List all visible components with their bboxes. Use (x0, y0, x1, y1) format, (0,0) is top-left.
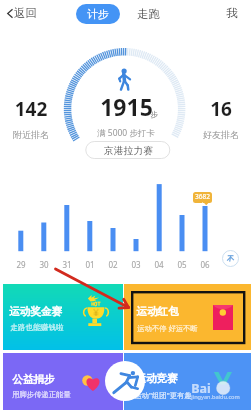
staticText: 返回 (14, 6, 37, 20)
staticText: 京港拉力赛 (104, 145, 153, 157)
staticText: 走路也能赚钱啦 (10, 323, 64, 333)
staticText: 用脚步传递正能量 (12, 390, 71, 399)
button[interactable]: 运动奖金赛 (3, 284, 123, 350)
staticText: 运动"组团"更有趣 (134, 390, 192, 400)
staticText: 29 (6, 259, 36, 270)
staticText: 3682步 (193, 192, 212, 203)
staticText: 计步 (87, 7, 109, 21)
button[interactable]: 公益捐步 (3, 353, 123, 410)
button[interactable] (192, 96, 250, 140)
staticText: 运动奖金赛 (9, 305, 62, 318)
staticText: 142 (0, 96, 66, 122)
staticText: 30 (29, 259, 59, 270)
button[interactable]: 运动红包 (124, 284, 251, 350)
staticText: 我 (226, 6, 238, 20)
staticText: 附近排名 (0, 129, 66, 140)
staticText: 02 (98, 259, 128, 270)
staticText: Bai (191, 380, 211, 397)
staticText: 步 (150, 110, 158, 119)
staticText: 05 (167, 259, 197, 270)
staticText: 04 (144, 259, 174, 270)
button[interactable]: 京港拉力赛 (86, 142, 170, 159)
staticText: 1915 (100, 91, 153, 122)
staticText: 公益捐步 (12, 373, 55, 386)
button[interactable]: 我 (223, 2, 241, 24)
button[interactable]: 返回 (6, 4, 38, 22)
staticText: 好友排名 (186, 129, 251, 140)
button[interactable] (2, 96, 60, 140)
button[interactable]: 计步 (76, 4, 120, 24)
button[interactable]: Start running (105, 361, 145, 401)
staticText: 运动不停 好运不断 (137, 323, 198, 333)
staticText: 03 (121, 259, 151, 270)
staticText: 31 (52, 259, 82, 270)
staticText: 运动红包 (136, 305, 179, 318)
button[interactable]: Share (222, 250, 239, 267)
staticText: jingyan.baidu.com (191, 393, 240, 401)
button[interactable]: 走跑 (134, 3, 163, 25)
staticText: 运动竞赛 (135, 372, 178, 385)
staticText: 满 5000 步打卡 (66, 127, 186, 139)
staticText: 16 (186, 96, 251, 122)
staticText: 走跑 (137, 7, 160, 21)
staticText: 01 (75, 259, 105, 270)
staticText: 06 (190, 259, 220, 270)
button[interactable]: 运动竞赛 (124, 353, 251, 410)
